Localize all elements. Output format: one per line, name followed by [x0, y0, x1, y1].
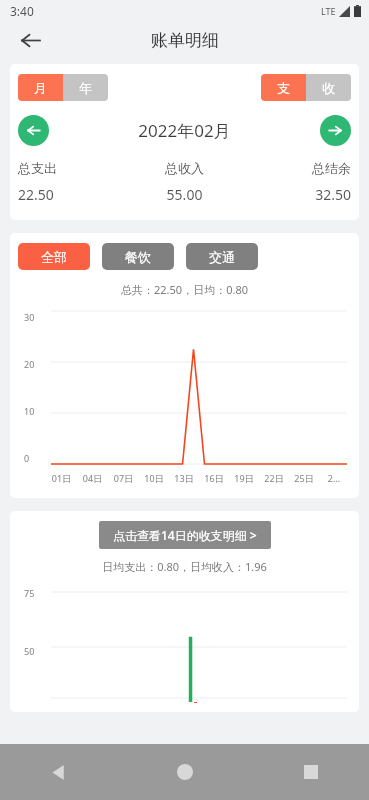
button[interactable]: 年 [63, 74, 108, 101]
staticText: 总收入 [129, 160, 240, 176]
staticText: 75 [24, 587, 35, 599]
staticText: 支 [277, 80, 290, 96]
button[interactable]: 支 [261, 74, 306, 101]
staticText: 20 [24, 358, 35, 370]
staticText: 55.00 [129, 185, 240, 204]
staticText: 0 [24, 452, 30, 464]
button[interactable]: 餐饮 [102, 243, 174, 270]
staticText: 30 [24, 311, 35, 323]
staticText: LTE [321, 5, 336, 17]
staticText: 10日 [139, 472, 169, 484]
staticText: 点击查看14日的收支明细 > [113, 527, 257, 543]
button[interactable]: 交通 [186, 243, 258, 270]
button[interactable]: Back [16, 26, 44, 54]
staticText: 22.50 [18, 185, 129, 204]
button[interactable]: 全部 [18, 243, 90, 270]
button[interactable]: Back [40, 754, 76, 790]
staticText: 全部 [41, 249, 67, 265]
staticText: 3:40 [10, 3, 34, 19]
staticText: 总支出 [18, 160, 129, 176]
staticText: 年 [79, 80, 92, 96]
staticText: 账单明细 [151, 30, 219, 51]
staticText: 50 [24, 645, 35, 657]
button[interactable]: Home [167, 754, 203, 790]
staticText: 19日 [229, 472, 259, 484]
staticText: 日均支出：0.80，日均收入：1.96 [18, 559, 351, 574]
staticText: 餐饮 [125, 249, 151, 265]
staticText: 16日 [199, 472, 229, 484]
staticText: 总共：22.50，日均：0.80 [18, 282, 351, 297]
staticText: 2022年02月 [49, 119, 320, 142]
staticText: 01日 [46, 472, 77, 484]
button[interactable]: Next month [320, 115, 351, 146]
staticText: 10 [24, 405, 35, 417]
staticText: 交通 [209, 249, 235, 265]
button[interactable]: Recents [293, 754, 329, 790]
staticText: 月 [34, 80, 47, 96]
staticText: 13日 [169, 472, 199, 484]
staticText: 22日 [259, 472, 289, 484]
staticText: 25日 [289, 472, 319, 484]
staticText: 2… [319, 472, 349, 484]
staticText: 07日 [108, 472, 139, 484]
staticText: 32.50 [240, 185, 351, 204]
button[interactable]: Previous month [18, 115, 49, 146]
staticText: 总结余 [240, 160, 351, 176]
button[interactable]: 月 [18, 74, 63, 101]
staticText: 收 [322, 80, 335, 96]
staticText: 04日 [77, 472, 108, 484]
button[interactable]: 收 [306, 74, 351, 101]
button[interactable]: 点击查看14日的收支明细 > [113, 527, 257, 543]
